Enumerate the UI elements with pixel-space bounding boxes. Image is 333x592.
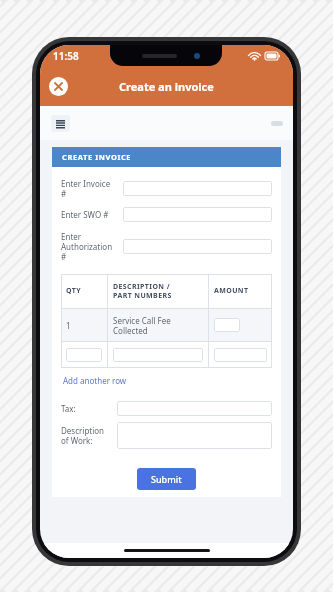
button[interactable]: [214, 318, 240, 332]
button[interactable]: Add another row: [63, 375, 127, 386]
staticText: 1: [66, 320, 71, 331]
button[interactable]: Submit: [137, 468, 196, 490]
button[interactable]: [66, 348, 102, 362]
button[interactable]: [123, 239, 272, 254]
button[interactable]: [117, 401, 272, 416]
button[interactable]: [113, 348, 203, 362]
button[interactable]: Close: [49, 77, 68, 96]
button[interactable]: [123, 207, 272, 222]
button[interactable]: [123, 181, 272, 196]
staticText: Enter SWO #: [61, 209, 109, 220]
staticText: Enter Invoice #: [61, 178, 111, 199]
button[interactable]: [117, 422, 272, 449]
staticText: Tax:: [61, 403, 76, 414]
staticText: Submit: [151, 473, 182, 485]
staticText: Service Call Fee Collected: [113, 315, 171, 336]
staticText: Enter Authorization #: [61, 231, 113, 262]
staticText: Description of Work:: [61, 425, 105, 446]
staticText: CREATE INVOICE: [62, 152, 132, 162]
button[interactable]: Menu: [51, 115, 70, 132]
staticText: AMOUNT: [214, 286, 249, 296]
staticText: QTY: [66, 286, 81, 296]
button[interactable]: [214, 348, 267, 362]
staticText: 11:58: [53, 49, 79, 63]
staticText: Create an invoice: [119, 79, 214, 94]
staticText: DESCRIPTION / PART NUMBERS: [113, 282, 172, 300]
